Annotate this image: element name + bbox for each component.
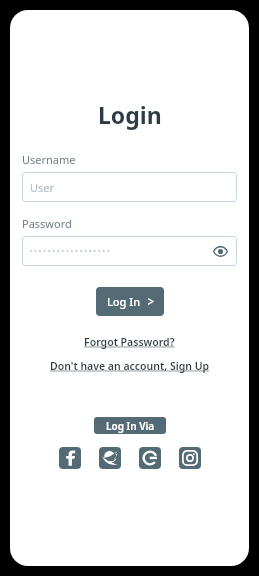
button[interactable]: Google bbox=[139, 447, 161, 469]
button[interactable]: Twitter bbox=[99, 447, 121, 469]
button[interactable]: Log In bbox=[96, 287, 164, 316]
button[interactable]: User bbox=[22, 172, 237, 202]
button[interactable]: Don't have an account, Sign Up bbox=[46, 358, 214, 374]
staticText: Username bbox=[22, 152, 76, 167]
staticText: Password bbox=[22, 216, 72, 231]
button[interactable]: Facebook bbox=[59, 447, 81, 469]
staticText: Log In bbox=[107, 294, 141, 309]
staticText: User bbox=[30, 180, 55, 195]
button[interactable]: Instagram bbox=[179, 447, 201, 469]
button[interactable]: Log In Via bbox=[94, 417, 166, 434]
staticText: Forgot Password? bbox=[84, 335, 175, 349]
button[interactable]: Show password bbox=[210, 241, 230, 261]
button[interactable]: Show password bbox=[22, 236, 237, 266]
staticText: Log In Via bbox=[106, 419, 155, 433]
staticText: Login bbox=[98, 99, 162, 130]
button[interactable]: Forgot Password? bbox=[80, 334, 179, 350]
staticText: Don't have an account, Sign Up bbox=[50, 359, 210, 373]
